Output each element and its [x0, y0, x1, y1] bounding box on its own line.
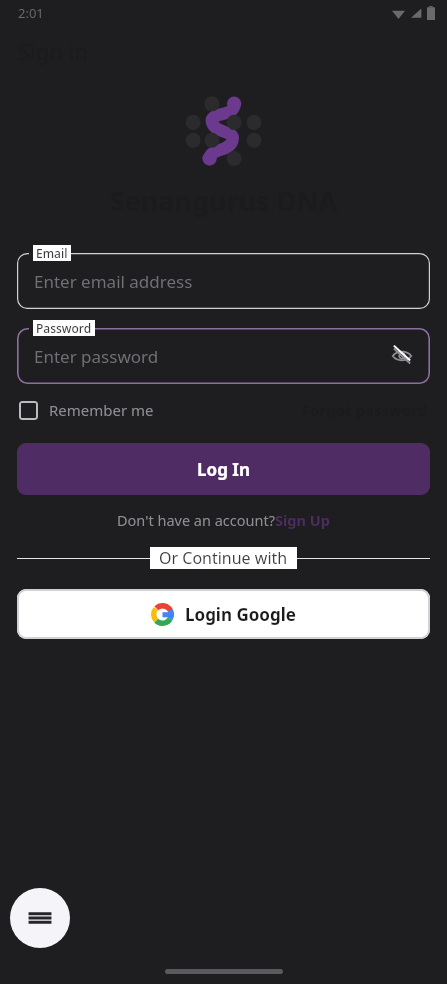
- button[interactable]: Remember me: [19, 400, 154, 420]
- staticText: Enter email address: [34, 270, 193, 293]
- staticText: Enter password: [34, 345, 159, 368]
- staticText: Don't have an account?: [117, 510, 275, 530]
- button[interactable]: Login Google: [17, 589, 430, 639]
- staticText: Log In: [197, 458, 250, 481]
- staticText: Remember me: [49, 400, 154, 420]
- button[interactable]: Log In: [17, 443, 430, 495]
- button[interactable]: Menu: [10, 888, 70, 948]
- staticText: Or Continue with: [159, 547, 288, 569]
- staticText: 2:01: [18, 4, 44, 22]
- button[interactable]: Sign Up: [275, 510, 330, 530]
- button[interactable]: Email: [17, 245, 430, 309]
- staticText: Password: [36, 320, 92, 336]
- staticText: Email: [36, 245, 68, 261]
- button[interactable]: Password: [17, 320, 430, 384]
- staticText: Login Google: [185, 603, 296, 626]
- button[interactable]: Show password: [386, 340, 418, 372]
- staticText: Sign Up: [275, 510, 330, 530]
